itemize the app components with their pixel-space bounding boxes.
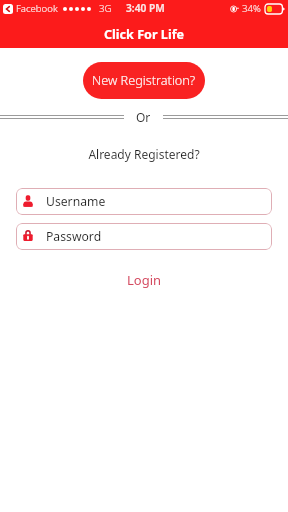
- staticText: New Registration?: [92, 71, 196, 88]
- other: Alarm: [230, 5, 238, 13]
- button[interactable]: Username: [16, 188, 272, 215]
- staticText: Facebook: [16, 2, 58, 15]
- staticText: 3G: [99, 2, 112, 15]
- button[interactable]: Password: [16, 223, 272, 250]
- button[interactable]: Login: [115, 268, 174, 292]
- button[interactable]: Back: [3, 4, 13, 14]
- other: Battery 34 percent: [265, 4, 285, 14]
- staticText: Login: [127, 271, 162, 289]
- staticText: Or: [136, 109, 151, 125]
- staticText: 34%: [242, 2, 261, 15]
- staticText: 3:40 PM: [126, 1, 165, 15]
- staticText: Username: [46, 193, 106, 210]
- button[interactable]: New Registration?: [83, 62, 205, 99]
- staticText: Password: [46, 228, 102, 245]
- staticText: Already Registered?: [0, 146, 288, 162]
- staticText: Click For Life: [104, 26, 185, 43]
